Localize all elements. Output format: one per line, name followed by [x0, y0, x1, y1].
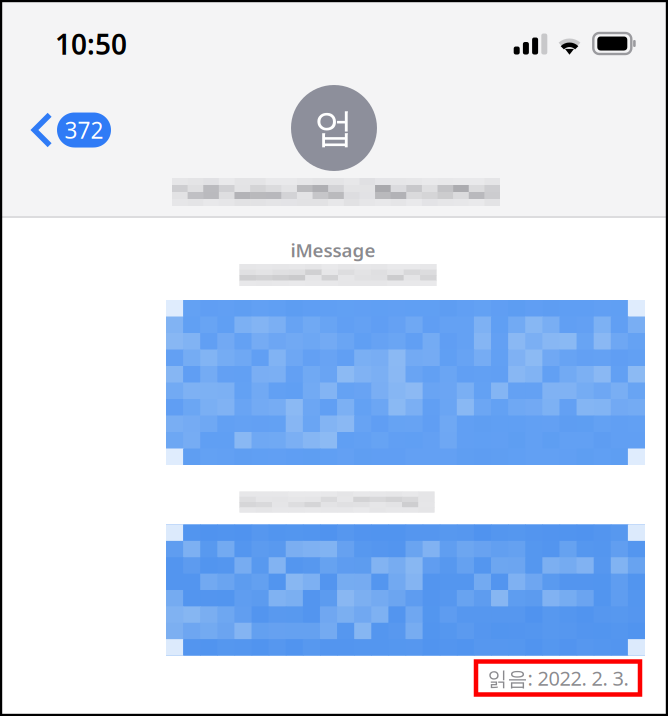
staticText: 372 [64, 115, 103, 145]
button[interactable]: Contact profile [291, 85, 377, 171]
button[interactable]: Read receipt, 2022. 2. 3. [476, 661, 640, 694]
button[interactable]: Back to 372 conversations [31, 108, 111, 152]
staticText: iMessage [290, 238, 375, 262]
staticText: 10:50 [55, 25, 127, 63]
staticText: 읽음: 2022. 2. 3. [487, 665, 628, 691]
staticText: 업 [314, 103, 354, 152]
